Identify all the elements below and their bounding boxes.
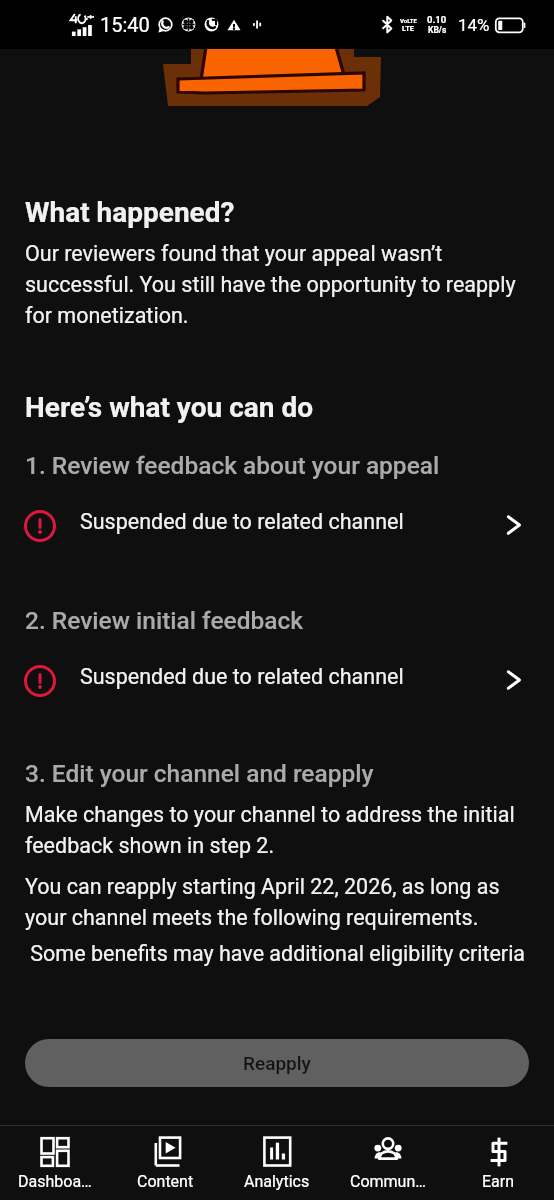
button[interactable]: Reapply bbox=[25, 1039, 529, 1087]
staticText: What happened? bbox=[25, 196, 235, 229]
staticText: You can reapply starting April 22, 2026,… bbox=[25, 874, 529, 930]
staticText: Some benefits may have additional eligib… bbox=[25, 941, 526, 966]
staticText: Reapply bbox=[243, 1052, 311, 1074]
button[interactable]: Suspended due to related channel bbox=[25, 656, 529, 696]
other: Open details bbox=[501, 666, 529, 694]
button[interactable]: Suspended due to related channel bbox=[25, 501, 529, 541]
staticText: Our reviewers found that your appeal was… bbox=[25, 241, 529, 328]
button[interactable]: Analytics bbox=[221, 1126, 332, 1200]
button[interactable]: Commun… bbox=[332, 1126, 443, 1200]
button[interactable]: Earn bbox=[443, 1126, 554, 1200]
staticText: Analytics bbox=[244, 1172, 310, 1191]
staticText: 15:40 bbox=[100, 13, 150, 36]
staticText: KB/s bbox=[428, 25, 447, 35]
staticText: 2. Review initial feedback bbox=[25, 606, 304, 635]
other: Open details bbox=[501, 511, 529, 539]
staticText: Earn bbox=[482, 1172, 515, 1191]
staticText: 14% bbox=[458, 15, 490, 35]
staticText: 0.10 bbox=[427, 14, 447, 25]
staticText: 3. Edit your channel and reapply bbox=[25, 759, 374, 788]
staticText: Here’s what you can do bbox=[25, 391, 313, 424]
staticText: Dashboa… bbox=[18, 1172, 92, 1191]
staticText: Suspended due to related channel bbox=[80, 664, 404, 689]
staticText: LTE bbox=[402, 24, 415, 33]
staticText: 1. Review feedback about your appeal bbox=[25, 451, 440, 480]
staticText: VoLTE bbox=[400, 17, 417, 24]
staticText: Commun… bbox=[350, 1172, 426, 1191]
staticText: Content bbox=[137, 1172, 194, 1191]
button[interactable]: Dashboa… bbox=[0, 1126, 110, 1200]
staticText: Make changes to your channel to address … bbox=[25, 802, 529, 858]
button[interactable]: Content bbox=[110, 1126, 221, 1200]
staticText: Suspended due to related channel bbox=[80, 509, 404, 534]
